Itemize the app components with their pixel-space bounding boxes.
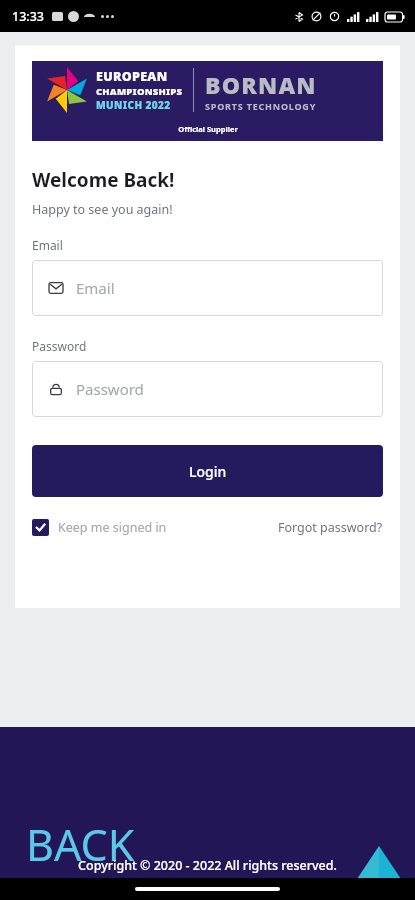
button[interactable]: Email [32,260,383,316]
button[interactable]: Keep me signed in [32,519,167,536]
staticText: Welcome Back! [32,167,175,193]
staticText: EUROPEAN [96,68,168,85]
button[interactable]: Password [32,361,383,417]
staticText: Password [32,338,87,354]
staticText: Password [76,379,144,399]
staticText: SPORTS TECHNOLOGY [205,100,317,112]
staticText: Login [189,462,227,481]
staticText: 13:33 [12,8,45,25]
button[interactable]: Login [32,445,383,497]
staticText: Happy to see you again! [32,201,173,218]
staticText: MUNICH 2022 [96,98,171,112]
staticText: Official Supplier [178,124,238,134]
staticText: BACK [26,815,135,874]
staticText: Email [32,237,63,253]
staticText: Copyright © 2020 - 2022 All rights reser… [78,857,337,874]
staticText: CHAMPIONSHIPS [96,85,183,98]
button[interactable]: Forgot password? [278,519,383,536]
staticText: BORNAN [205,69,317,100]
staticText: Email [76,278,115,298]
staticText: Forgot password? [278,519,383,536]
staticText: Keep me signed in [58,519,167,536]
